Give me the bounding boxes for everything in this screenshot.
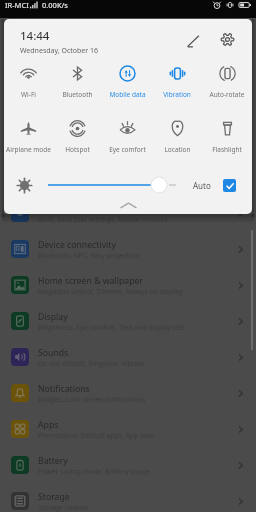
staticText: Eye comfort	[109, 145, 146, 154]
staticText: Do not disturb, Ringtone, Vibrate	[38, 359, 145, 368]
staticText: Auto-rotate	[209, 90, 245, 99]
staticText: Wi-Fi, Dual SIM settings, Mobile network	[38, 215, 169, 224]
staticText: Vibration	[163, 90, 191, 99]
staticText: Location	[164, 145, 191, 154]
staticText: Brightness, Eye comfort, Text and displa…	[38, 323, 185, 332]
staticText: Sounds	[38, 347, 69, 359]
button[interactable]: Settings	[216, 28, 239, 51]
button[interactable]: Auto brightness	[223, 179, 236, 192]
staticText: 14:44	[20, 28, 50, 44]
button[interactable]: Wi-Fi	[0, 195, 256, 231]
button[interactable]: Mobile data	[102, 60, 152, 110]
staticText: Permissions, Default apps, App twin	[38, 431, 155, 440]
staticText: Wi-Fi	[38, 203, 58, 215]
staticText: Power saving mode, Battery usage	[38, 467, 151, 476]
button[interactable]: Auto-rotate	[202, 60, 252, 110]
button[interactable]: Flashlight	[202, 115, 252, 165]
staticText: Battery	[38, 455, 68, 467]
button[interactable]: Location	[152, 115, 202, 165]
staticText: Bluetooth	[62, 90, 93, 99]
button[interactable]: Eye comfort	[102, 115, 152, 165]
button[interactable]: Edit quick settings	[182, 30, 204, 52]
button[interactable]: Sounds	[0, 339, 256, 375]
staticText: Wi-Fi	[21, 90, 36, 99]
button[interactable]: Apps	[0, 411, 256, 447]
staticText: Device connectivity	[38, 239, 116, 251]
staticText: Apps	[38, 419, 59, 431]
button[interactable]: Display	[0, 303, 256, 339]
button[interactable]: Vibration	[152, 60, 202, 110]
staticText: Home screen & wallpaper	[38, 275, 143, 287]
staticText: Storage	[38, 491, 70, 503]
button[interactable]: Device connectivity	[0, 231, 256, 267]
button[interactable]: Notifications	[0, 375, 256, 411]
staticText: Storage cleaner	[38, 503, 89, 512]
staticText: Wednesday, October 16	[20, 46, 99, 56]
button[interactable]: Battery	[0, 447, 256, 483]
staticText: Notifications	[38, 383, 90, 395]
staticText: Badges, Lock screen notifications	[38, 395, 146, 404]
button[interactable]: Wi-Fi	[4, 60, 53, 110]
button[interactable]: Bluetooth	[53, 60, 102, 110]
staticText: Magazine unlock, Themes, Always on displ…	[38, 287, 183, 296]
button[interactable]: Home screen & wallpaper	[0, 267, 256, 303]
button[interactable]: Collapse	[4, 199, 252, 211]
button[interactable]: Hotspot	[53, 115, 102, 165]
staticText: Flashlight	[212, 145, 242, 154]
staticText: Auto	[193, 180, 211, 191]
staticText: Bluetooth, NFC, Easy projection	[38, 251, 140, 260]
staticText: Hotspot	[65, 145, 90, 154]
staticText: IR-MCI	[5, 0, 29, 10]
staticText: Display	[38, 311, 68, 323]
button[interactable]: Storage	[0, 483, 256, 512]
button[interactable]: Airplane mode	[4, 115, 53, 165]
staticText: Airplane mode	[6, 145, 51, 154]
staticText: 0.00K/s	[42, 0, 68, 10]
staticText: Mobile data	[109, 90, 146, 99]
